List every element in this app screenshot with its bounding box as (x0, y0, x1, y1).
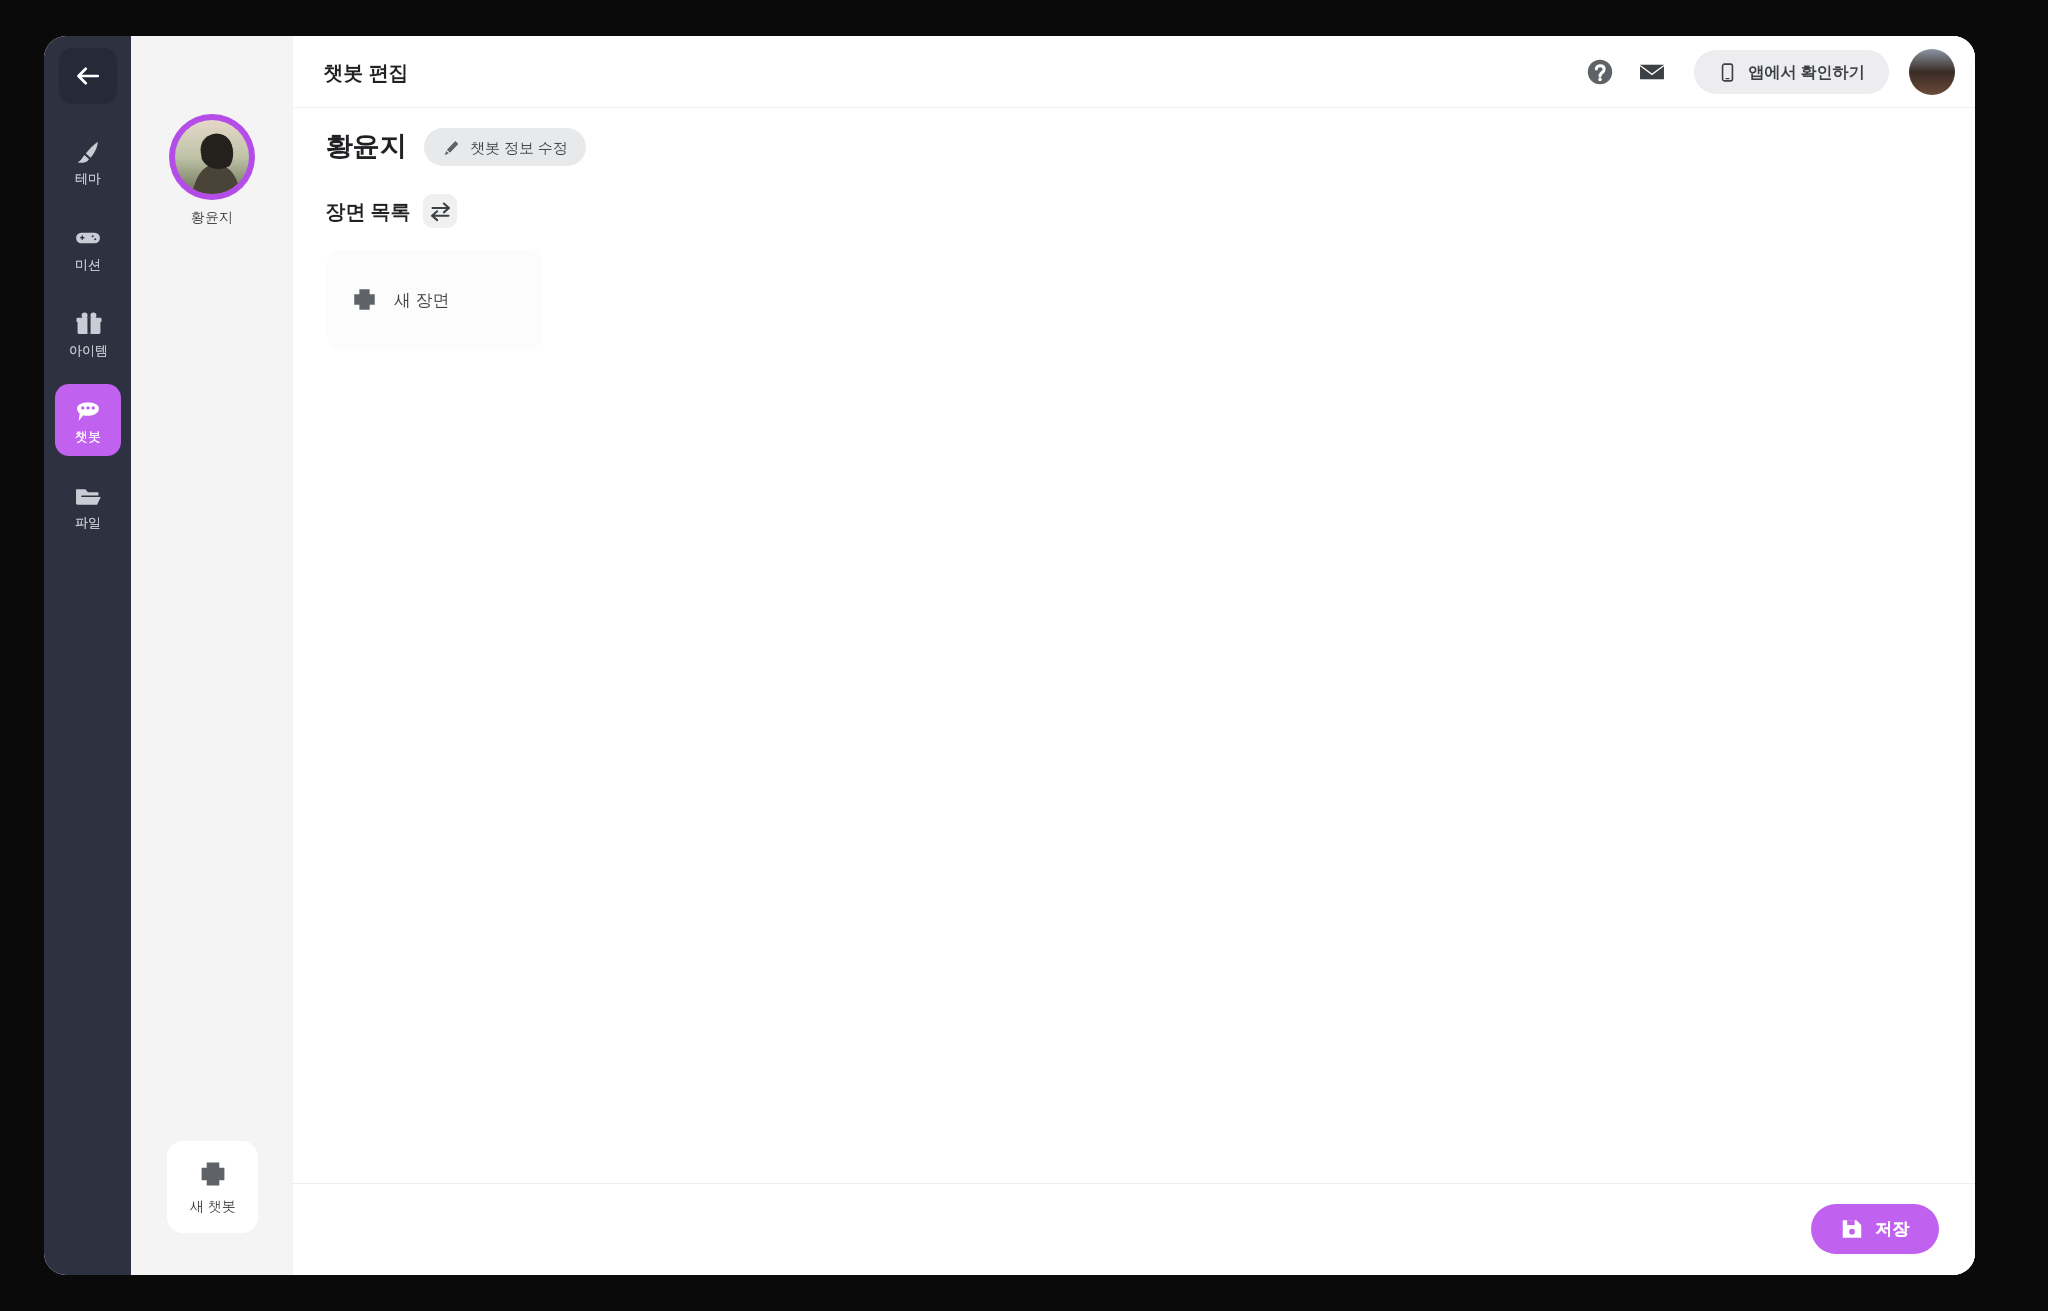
staticText: 황윤지 (325, 130, 406, 164)
staticText: 새 장면 (394, 288, 450, 311)
staticText: 파일 (75, 514, 101, 530)
staticText: 황윤지 (191, 209, 233, 227)
button[interactable]: Messages (1632, 52, 1672, 92)
button[interactable]: 아이템 (55, 302, 121, 366)
staticText: 저장 (1875, 1219, 1909, 1240)
button[interactable]: 앱에서 확인하기 (1694, 50, 1889, 94)
button[interactable]: Account (1909, 49, 1955, 95)
staticText: 미션 (75, 256, 101, 272)
button[interactable]: 테마 (55, 130, 121, 194)
staticText: 아이템 (69, 342, 108, 358)
staticText: 장면 목록 (325, 198, 411, 225)
staticText: 챗봇 편집 (323, 59, 409, 86)
staticText: 테마 (75, 170, 101, 186)
button[interactable]: Back (59, 48, 117, 104)
button[interactable]: 미션 (55, 216, 121, 280)
button[interactable]: Reorder scenes (423, 194, 457, 228)
staticText: 앱에서 확인하기 (1748, 61, 1865, 83)
button[interactable]: 새 장면 (327, 250, 543, 349)
staticText: 챗봇 (75, 428, 101, 444)
button[interactable]: 챗봇 정보 수정 (424, 128, 586, 166)
button[interactable]: 저장 (1811, 1204, 1939, 1254)
button[interactable] (169, 114, 255, 200)
button[interactable]: 챗봇 (55, 384, 121, 456)
button[interactable]: 새 챗봇 (167, 1141, 258, 1233)
button[interactable]: 파일 (55, 474, 121, 538)
button[interactable]: Help (1580, 52, 1620, 92)
staticText: 챗봇 정보 수정 (470, 137, 568, 157)
staticText: 새 챗봇 (190, 1196, 236, 1215)
